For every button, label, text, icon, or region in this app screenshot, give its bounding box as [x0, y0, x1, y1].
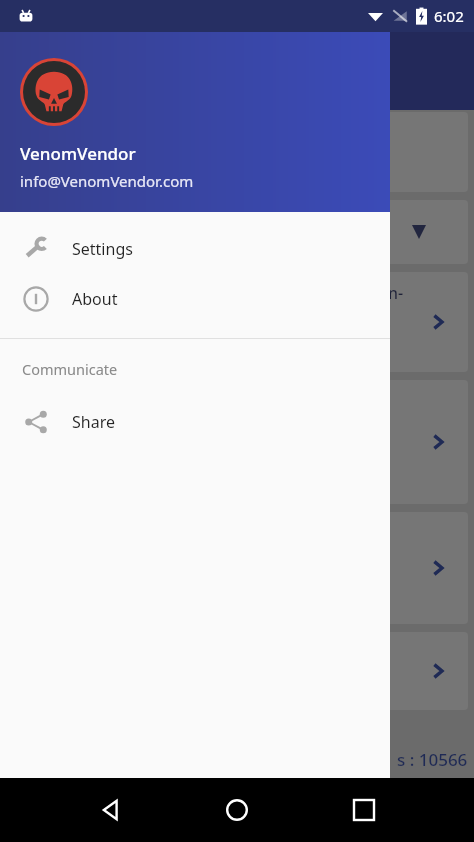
staticText: Settings — [72, 238, 133, 260]
staticText: Share — [72, 411, 115, 433]
staticText: About — [72, 288, 118, 310]
staticText: 6:02 — [434, 6, 464, 26]
button[interactable]: Un… — [6, 512, 468, 624]
staticText: info@VenomVendor.com — [20, 171, 194, 191]
button[interactable]: Sam Jun- — [6, 272, 468, 372]
button[interactable]: e l… — [6, 632, 468, 710]
button[interactable]: Share — [0, 397, 390, 447]
button[interactable]: About — [0, 274, 390, 324]
staticText: Communicate — [22, 359, 118, 379]
staticText: VenomVendor — [20, 142, 136, 165]
staticText: s : 10566 — [397, 748, 468, 771]
button[interactable]: Recent apps — [340, 786, 388, 834]
button[interactable]: Back — [86, 786, 134, 834]
button[interactable]: Home — [213, 786, 261, 834]
staticText: sand d… — [336, 312, 392, 331]
button[interactable]: Settings — [0, 224, 390, 274]
staticText: Sam Jun- — [336, 282, 404, 304]
button[interactable]: Noti… — [6, 380, 468, 504]
